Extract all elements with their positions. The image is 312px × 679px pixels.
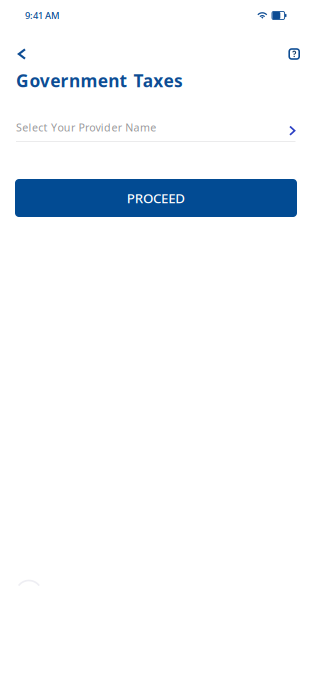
button[interactable]: Back <box>9 42 34 66</box>
staticText: Government Taxes <box>16 69 183 92</box>
button[interactable]: Select Your Provider Name <box>0 92 312 142</box>
staticText: PROCEED <box>127 189 185 207</box>
button[interactable]: Help <box>282 42 306 66</box>
button[interactable]: PROCEED <box>15 179 297 217</box>
staticText: Select Your Provider Name <box>16 120 156 135</box>
staticText: 9:41 AM <box>25 9 60 22</box>
